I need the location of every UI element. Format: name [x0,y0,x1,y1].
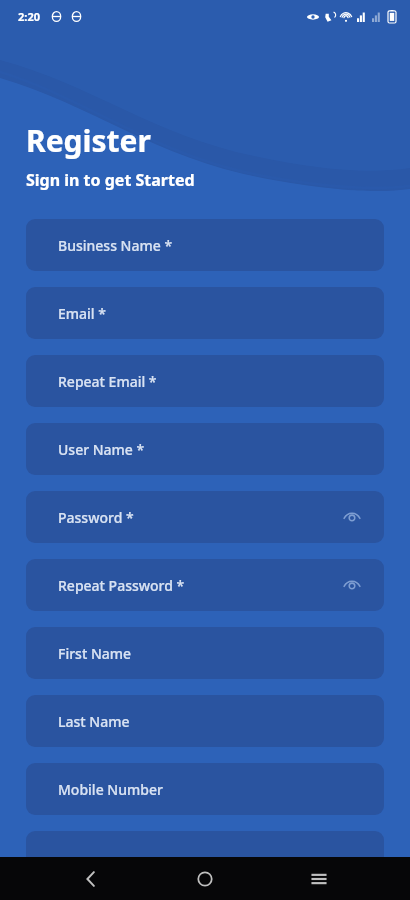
staticText: Register [26,120,151,161]
staticText: 2:20 [18,9,40,24]
button[interactable]: First Name [26,627,384,679]
button[interactable]: Repeat Email * [26,355,384,407]
staticText: Sign in to get Started [26,169,195,191]
staticText: First Name [58,644,132,663]
staticText: Last Name [58,712,130,731]
staticText: Password * [58,508,134,527]
button[interactable]: Email * [26,287,384,339]
staticText: Mobile Number [58,780,163,799]
staticText: Business Name * [58,236,173,255]
button[interactable]: User Name * [26,423,384,475]
staticText: Email * [58,304,106,323]
staticText: User Name * [58,440,145,459]
button[interactable]: Last Name [26,695,384,747]
button[interactable]: Show password [338,571,366,599]
button[interactable]: Business Name * [26,219,384,271]
staticText: Repeat Password * [58,576,185,595]
button[interactable] [26,831,384,883]
button[interactable]: Repeat Password * [26,559,384,611]
button[interactable]: Recent apps [296,857,342,900]
button[interactable]: Show password [338,503,366,531]
button[interactable]: Home [182,857,228,900]
button[interactable]: Back [68,857,114,900]
button[interactable]: Password * [26,491,384,543]
staticText: Repeat Email * [58,372,157,391]
button[interactable]: Mobile Number [26,763,384,815]
